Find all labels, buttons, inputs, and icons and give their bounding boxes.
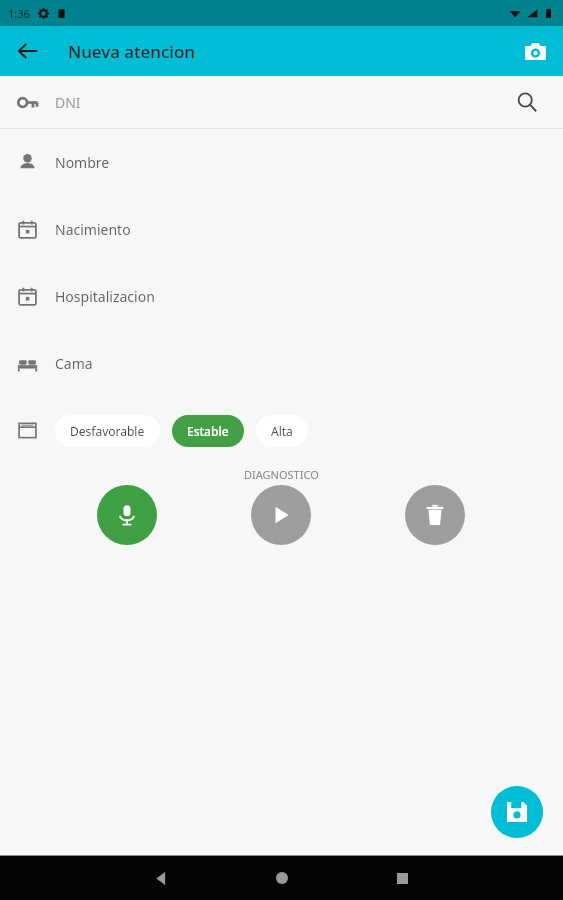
staticText: 1:36 [8, 6, 30, 21]
staticText: DIAGNOSTICO [244, 467, 319, 482]
button[interactable]: Estable [172, 415, 244, 447]
button[interactable]: Buscar [509, 84, 545, 120]
button[interactable]: Guardar [491, 786, 543, 838]
staticText: Estable [187, 423, 229, 439]
button[interactable]: Cama [0, 330, 563, 397]
button[interactable]: Desfavorable [55, 415, 160, 447]
button[interactable]: Nombre [0, 129, 563, 196]
staticText: Alta [271, 423, 293, 439]
button[interactable]: DNI [0, 76, 563, 128]
button[interactable]: Cámara [515, 31, 555, 71]
button[interactable]: Inicio [265, 861, 299, 895]
button[interactable]: Eliminar [405, 485, 465, 545]
staticText: DNI [55, 93, 81, 112]
button[interactable]: Reproducir [251, 485, 311, 545]
staticText: Cama [55, 354, 93, 373]
staticText: Nacimiento [55, 220, 131, 239]
button[interactable]: Atrás [8, 31, 48, 71]
staticText: Hospitalizacion [55, 287, 155, 306]
button[interactable]: Hospitalizacion [0, 263, 563, 330]
button[interactable]: Atrás [144, 861, 178, 895]
button[interactable]: Grabar [97, 485, 157, 545]
button[interactable]: Nacimiento [0, 196, 563, 263]
staticText: Nombre [55, 153, 110, 172]
button[interactable]: Alta [256, 415, 308, 447]
staticText: Nueva atencion [68, 40, 196, 63]
button[interactable]: Recientes [385, 861, 419, 895]
staticText: Desfavorable [70, 423, 145, 439]
